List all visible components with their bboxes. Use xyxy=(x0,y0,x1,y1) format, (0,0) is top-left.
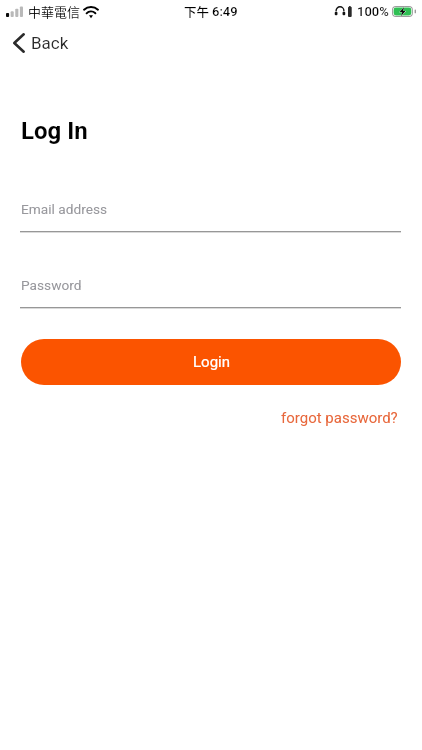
staticText: 6:49 xyxy=(212,4,238,19)
button[interactable]: Login xyxy=(21,339,401,385)
button[interactable]: forgot password? xyxy=(281,409,422,427)
staticText: Email address xyxy=(21,201,108,217)
staticText: Login xyxy=(193,353,230,371)
staticText: 下午 xyxy=(184,2,210,20)
button[interactable]: Back xyxy=(0,29,76,57)
staticText: 中華電信 xyxy=(28,2,81,21)
other: Back xyxy=(13,33,25,53)
staticText: 100% xyxy=(357,4,389,19)
staticText: Log In xyxy=(21,117,88,145)
button[interactable]: Password xyxy=(20,269,401,309)
staticText: Back xyxy=(31,33,69,53)
button[interactable]: Email address xyxy=(20,193,401,233)
staticText: Password xyxy=(21,277,82,293)
